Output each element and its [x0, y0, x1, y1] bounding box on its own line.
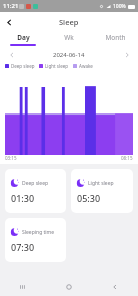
staticText: Deep sleep — [11, 63, 35, 69]
button[interactable]: Back — [92, 278, 138, 296]
staticText: Wk — [64, 33, 74, 42]
button[interactable]: Wk — [46, 31, 92, 48]
staticText: 08:15 — [121, 155, 133, 161]
staticText: 11:21 — [3, 2, 19, 10]
staticText: Sleep — [59, 17, 79, 27]
staticText: 03:15 — [5, 155, 17, 161]
button[interactable]: Sleeping time — [5, 218, 66, 262]
button[interactable]: Next day — [121, 49, 132, 60]
staticText: Light sleep — [45, 63, 69, 69]
button[interactable]: Home — [46, 278, 92, 296]
button[interactable]: Back — [0, 13, 18, 31]
staticText: Deep sleep — [22, 180, 49, 187]
staticText: 2024-06-14 — [53, 51, 85, 59]
staticText: Month — [105, 33, 126, 42]
staticText: 01:30 — [11, 192, 35, 204]
button[interactable]: Month — [92, 31, 138, 48]
button[interactable]: Previous day — [6, 49, 17, 60]
staticText: 05:30 — [77, 192, 101, 204]
staticText: Sleeping time — [22, 229, 55, 236]
button[interactable]: Light sleep — [71, 169, 133, 213]
button[interactable]: Day — [0, 31, 46, 48]
staticText: 07:30 — [11, 241, 35, 253]
button[interactable]: Recents — [0, 278, 46, 296]
staticText: 100% — [113, 3, 126, 10]
staticText: Day — [17, 33, 30, 42]
staticText: Awake — [79, 63, 93, 69]
button[interactable]: Deep sleep — [5, 169, 66, 213]
staticText: Light sleep — [88, 180, 114, 187]
